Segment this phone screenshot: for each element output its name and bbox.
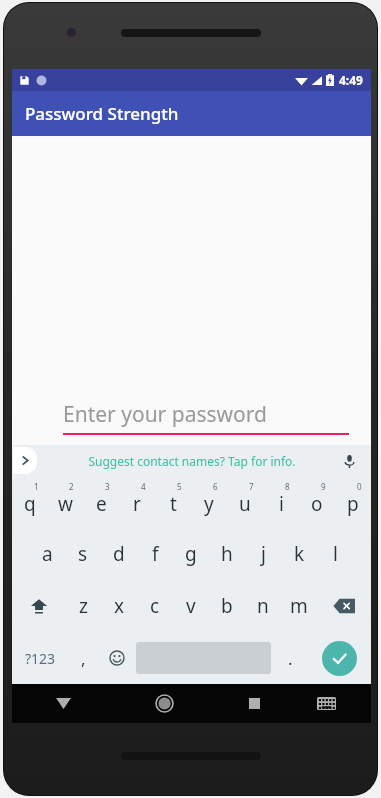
- staticText: h: [221, 541, 233, 567]
- button[interactable]: g: [173, 528, 209, 580]
- button[interactable]: Space: [134, 642, 273, 674]
- staticText: 6: [213, 481, 218, 492]
- staticText: j: [261, 541, 266, 567]
- staticText: t: [170, 491, 177, 517]
- button[interactable]: x: [101, 580, 137, 632]
- staticText: 2: [69, 481, 74, 492]
- staticText: f: [152, 541, 159, 567]
- staticText: 4:49: [339, 72, 363, 88]
- button[interactable]: 4: [119, 476, 155, 528]
- staticText: 4: [141, 481, 146, 492]
- staticText: a: [42, 541, 53, 567]
- button[interactable]: v: [173, 580, 209, 632]
- staticText: 8: [285, 481, 290, 492]
- staticText: 7: [249, 481, 254, 492]
- button[interactable]: 7: [227, 476, 263, 528]
- staticText: i: [279, 491, 284, 517]
- staticText: l: [333, 541, 338, 567]
- button[interactable]: Recents: [215, 684, 293, 723]
- button[interactable]: h: [209, 528, 245, 580]
- button[interactable]: .: [273, 632, 308, 684]
- button[interactable]: 3: [83, 476, 119, 528]
- button[interactable]: c: [137, 580, 173, 632]
- button[interactable]: j: [245, 528, 281, 580]
- button[interactable]: k: [281, 528, 317, 580]
- button[interactable]: f: [137, 528, 173, 580]
- staticText: g: [185, 541, 197, 567]
- button[interactable]: ?123: [12, 632, 68, 684]
- staticText: n: [257, 593, 269, 619]
- button[interactable]: Shift: [12, 580, 65, 632]
- staticText: k: [294, 541, 305, 567]
- button[interactable]: n: [245, 580, 281, 632]
- staticText: q: [24, 491, 36, 517]
- button[interactable]: Voice input: [339, 451, 359, 471]
- button[interactable]: a: [30, 528, 65, 580]
- staticText: 1: [34, 481, 39, 492]
- staticText: w: [58, 491, 73, 517]
- button[interactable]: s: [65, 528, 101, 580]
- staticText: ,: [81, 647, 86, 670]
- staticText: s: [78, 541, 88, 567]
- button[interactable]: m: [281, 580, 317, 632]
- staticText: m: [290, 593, 308, 619]
- button[interactable]: 5: [155, 476, 191, 528]
- staticText: o: [311, 491, 323, 517]
- button[interactable]: 8: [263, 476, 299, 528]
- staticText: 5: [177, 481, 182, 492]
- staticText: d: [113, 541, 125, 567]
- button[interactable]: 0: [335, 476, 371, 528]
- button[interactable]: Switch keyboard: [293, 684, 359, 723]
- button[interactable]: 9: [299, 476, 335, 528]
- button[interactable]: 1: [12, 476, 47, 528]
- button[interactable]: b: [209, 580, 245, 632]
- button[interactable]: Backspace: [317, 580, 371, 632]
- staticText: p: [347, 491, 359, 517]
- button[interactable]: 6: [191, 476, 227, 528]
- button[interactable]: Expand suggestions: [13, 447, 37, 474]
- button[interactable]: z: [65, 580, 101, 632]
- staticText: 3: [105, 481, 110, 492]
- staticText: x: [114, 593, 125, 619]
- staticText: z: [79, 593, 88, 619]
- button[interactable]: Enter: [308, 632, 371, 684]
- button[interactable]: Back: [12, 684, 114, 723]
- staticText: u: [239, 491, 251, 517]
- staticText: .: [288, 647, 293, 670]
- staticText: y: [204, 491, 214, 517]
- staticText: 9: [321, 481, 326, 492]
- staticText: ?123: [25, 649, 56, 668]
- button[interactable]: Suggest contact names? Tap for info.: [88, 453, 296, 469]
- staticText: Enter your password: [63, 400, 267, 429]
- staticText: Password Strength: [25, 102, 179, 125]
- button[interactable]: Emoji: [99, 632, 134, 684]
- staticText: v: [186, 593, 196, 619]
- staticText: r: [133, 491, 141, 517]
- staticText: b: [221, 593, 233, 619]
- button[interactable]: 2: [47, 476, 83, 528]
- button[interactable]: ,: [68, 632, 99, 684]
- button[interactable]: Home: [114, 684, 215, 723]
- staticText: 0: [357, 481, 362, 492]
- staticText: c: [150, 593, 160, 619]
- staticText: e: [96, 491, 107, 517]
- button[interactable]: d: [101, 528, 137, 580]
- button[interactable]: l: [317, 528, 353, 580]
- button[interactable]: Enter your password: [63, 400, 349, 435]
